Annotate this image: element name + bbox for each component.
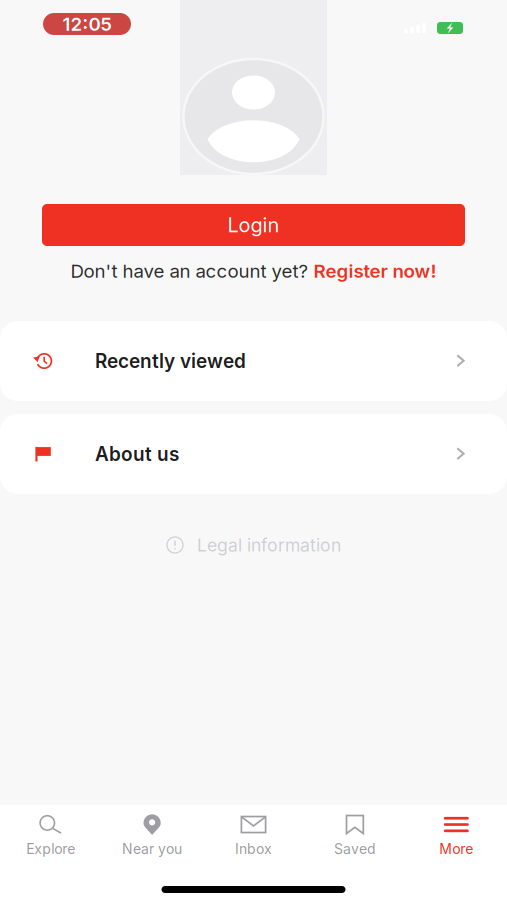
staticText: Login [227,213,279,237]
button[interactable]: Legal information [166,534,341,556]
staticText: Don't have an account yet? [70,260,313,282]
button[interactable]: Near you [101,805,203,861]
staticText: Saved [334,840,376,857]
button[interactable]: Saved [304,805,406,861]
staticText: Recently viewed [95,349,246,372]
staticText: More [439,840,473,857]
button[interactable]: More [406,805,507,861]
staticText: About us [95,442,179,465]
button[interactable]: Inbox [203,805,304,861]
button[interactable]: About us [0,414,507,494]
staticText: 12:05 [62,13,111,35]
staticText: Inbox [235,840,272,857]
staticText: Explore [26,840,75,857]
button[interactable]: Login [42,204,465,246]
button[interactable]: Recently viewed [0,321,507,401]
button[interactable]: Explore [0,805,101,861]
staticText: Register now! [313,260,436,282]
button[interactable]: Register now! [313,260,436,282]
staticText: Near you [122,840,182,857]
staticText: Legal information [197,534,341,556]
